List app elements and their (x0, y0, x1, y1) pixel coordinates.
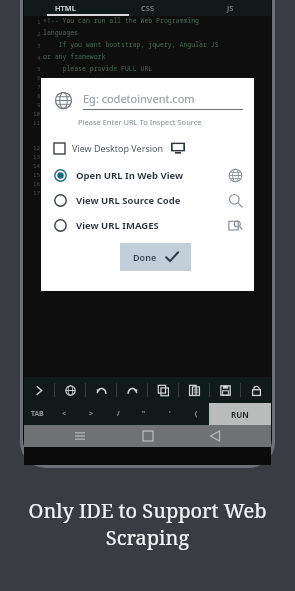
staticText: RUN (231, 409, 249, 420)
staticText: Ex: <Script (43, 76, 106, 88)
staticText: 5 (37, 65, 41, 73)
staticText: Eg: codetoinvent.com (83, 91, 195, 106)
button[interactable]: View URL IMAGES (54, 213, 243, 238)
staticText: 2 (37, 30, 41, 38)
staticText: 11 (33, 119, 41, 127)
staticText: 15 (33, 171, 41, 179)
staticText: If you want bootstrap, jquery, Angular J… (43, 40, 219, 52)
staticText: 12 (33, 144, 41, 152)
staticText: CSS (141, 3, 155, 13)
button[interactable]: Undo (86, 377, 116, 403)
button[interactable]: Redo (117, 377, 147, 403)
staticText: 9 (37, 101, 41, 109)
staticText: 3 (37, 42, 41, 50)
button[interactable]: Home (137, 425, 159, 447)
staticText: ( (195, 409, 198, 419)
staticText: JS (227, 3, 234, 13)
staticText: HTML (55, 3, 76, 13)
staticText: 8 (37, 92, 41, 100)
staticText: Done (133, 251, 157, 263)
button[interactable]: Copy (148, 377, 178, 403)
staticText: 17 (33, 189, 41, 197)
staticText: 6 (37, 74, 41, 82)
staticText: 16 (33, 180, 41, 188)
button[interactable]: Back (204, 425, 226, 447)
button[interactable]: Lock (241, 377, 271, 403)
staticText: or any framework (43, 52, 106, 64)
staticText: 1 (37, 18, 41, 26)
button[interactable]: > (78, 403, 105, 425)
button[interactable]: ' (157, 403, 183, 425)
staticText: < (62, 409, 67, 419)
button[interactable]: View Desktop Version (54, 138, 243, 158)
button[interactable]: Done (120, 243, 191, 271)
staticText: View URL IMAGES (76, 219, 159, 232)
staticText: > (89, 409, 94, 419)
staticText: 14 (33, 162, 41, 170)
staticText: Open URL In Web View (76, 169, 184, 182)
staticText: / (117, 409, 120, 419)
staticText: 13 (33, 153, 41, 161)
button[interactable]: TAB (24, 403, 51, 425)
button[interactable]: Save (210, 377, 240, 403)
staticText: Please Enter URL To Inspect Source (78, 117, 202, 127)
button[interactable]: / (105, 403, 131, 425)
button[interactable]: JS (189, 0, 271, 16)
button[interactable]: < (51, 403, 78, 425)
button[interactable]: " (131, 403, 157, 425)
button[interactable]: Paste (179, 377, 209, 403)
button[interactable]: Recent apps (69, 425, 91, 447)
staticText: 4 (37, 54, 41, 62)
button[interactable]: RUN (209, 403, 271, 425)
button[interactable]: View URL Source Code (54, 188, 243, 213)
staticText: TAB (31, 409, 44, 419)
button[interactable]: Open URL In Web View (54, 163, 243, 188)
staticText: 10 (33, 110, 41, 118)
button[interactable]: CSS (107, 0, 189, 16)
button[interactable]: ( (183, 403, 209, 425)
staticText: ' (169, 409, 171, 419)
staticText: please provide FULL URL (43, 64, 153, 76)
button[interactable]: Browser (55, 377, 85, 403)
staticText: " (142, 409, 146, 419)
button[interactable]: More (24, 377, 54, 403)
button[interactable]: HTML (24, 0, 107, 16)
staticText: 7 (37, 83, 41, 91)
staticText: languages (43, 28, 79, 40)
staticText: View URL Source Code (76, 194, 181, 207)
staticText: <!-- You can run all the Web Programming (43, 16, 200, 28)
staticText: Only IDE to Support Web Scraping (16, 497, 279, 551)
staticText: View Desktop Version (72, 142, 164, 154)
